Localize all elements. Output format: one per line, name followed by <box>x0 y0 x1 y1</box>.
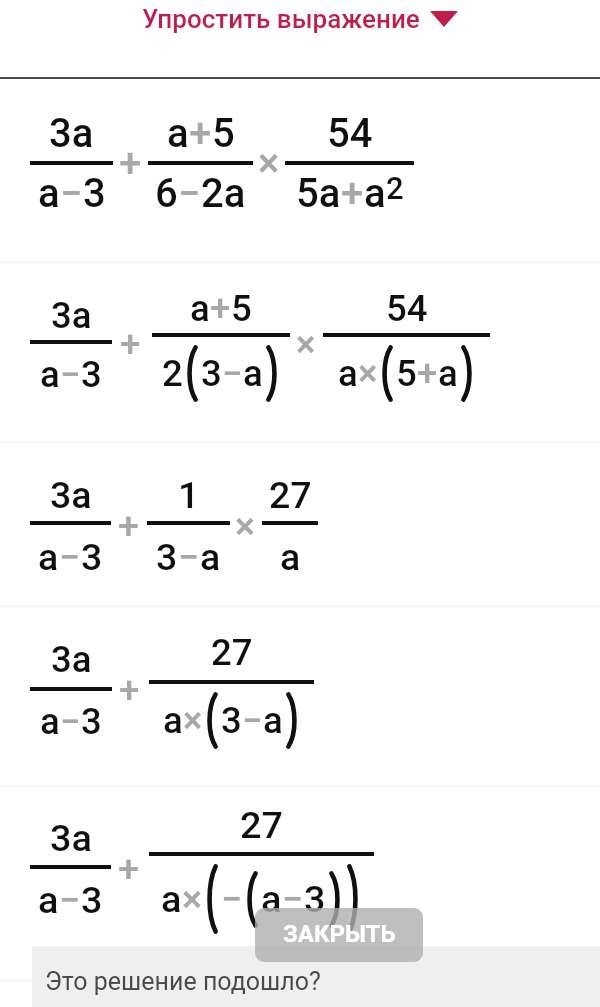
staticText: Это решение подошло? <box>45 967 321 996</box>
staticText: × <box>182 877 203 921</box>
staticText: a <box>200 535 221 579</box>
staticText: 3 <box>81 878 103 922</box>
staticText: 3a <box>49 110 94 157</box>
button[interactable]: Упростить выражение <box>142 4 458 34</box>
staticText: 3 <box>83 170 106 217</box>
staticText: 2 <box>386 170 404 206</box>
staticText: + <box>118 847 140 891</box>
staticText: 3 <box>221 699 242 742</box>
staticText: 3 <box>156 535 178 579</box>
staticText: 54 <box>327 110 373 157</box>
staticText: + <box>210 287 231 330</box>
staticText: a <box>364 170 386 217</box>
staticText: − <box>59 535 81 579</box>
staticText: a <box>163 699 183 742</box>
staticText: a <box>38 170 60 217</box>
staticText: a <box>40 353 60 396</box>
staticText: 27 <box>211 631 253 674</box>
staticText: a <box>167 110 189 157</box>
staticText: 3 <box>304 877 326 921</box>
staticText: 5a <box>296 170 341 217</box>
staticText: × <box>258 140 280 187</box>
staticText: × <box>183 699 203 742</box>
staticText: 5 <box>396 352 417 395</box>
staticText: + <box>417 352 438 395</box>
staticText: a <box>263 699 283 742</box>
staticText: − <box>178 170 201 217</box>
staticText: 3 <box>201 352 222 395</box>
staticText: a <box>38 535 59 579</box>
staticText: 5 <box>231 287 252 330</box>
staticText: 27 <box>269 473 312 517</box>
staticText: − <box>60 170 83 217</box>
staticText: 2 <box>162 352 183 395</box>
staticText: − <box>282 877 304 921</box>
staticText: a <box>38 878 59 922</box>
staticText: a <box>280 535 301 579</box>
staticText: a <box>438 352 458 395</box>
staticText: a <box>161 877 182 921</box>
staticText: 1 <box>178 473 200 517</box>
staticText: + <box>119 140 142 187</box>
staticText: 6 <box>155 170 178 217</box>
staticText: × <box>358 352 378 395</box>
staticText: 3a <box>50 816 92 860</box>
staticText: + <box>341 170 364 217</box>
staticText: − <box>60 353 81 396</box>
staticText: a <box>40 700 60 743</box>
staticText: 3a <box>51 294 92 337</box>
staticText: − <box>59 878 81 922</box>
staticText: a <box>243 352 263 395</box>
staticText: + <box>118 504 139 548</box>
staticText: 2a <box>201 170 246 217</box>
staticText: 3 <box>81 700 102 743</box>
staticText: + <box>189 110 212 157</box>
staticText: a <box>261 877 282 921</box>
staticText: × <box>296 323 316 366</box>
staticText: + <box>120 323 141 366</box>
staticText: 5 <box>212 110 235 157</box>
staticText: 3 <box>81 535 103 579</box>
staticText: 27 <box>240 803 283 847</box>
staticText: 3 <box>81 353 102 396</box>
staticText: ЗАКРЫТЬ <box>283 920 396 948</box>
staticText: − <box>178 535 200 579</box>
staticText: − <box>60 700 81 743</box>
staticText: 3a <box>50 473 92 517</box>
staticText: + <box>119 669 140 712</box>
staticText: a <box>338 352 358 395</box>
button[interactable]: ЗАКРЫТЬ <box>255 908 423 962</box>
staticText: − <box>221 877 243 921</box>
staticText: a <box>190 287 210 330</box>
staticText: 3a <box>51 638 92 681</box>
staticText: − <box>222 352 243 395</box>
staticText: 54 <box>386 287 428 330</box>
staticText: − <box>242 699 263 742</box>
staticText: × <box>235 504 256 548</box>
staticText: Упростить выражение <box>142 4 420 34</box>
